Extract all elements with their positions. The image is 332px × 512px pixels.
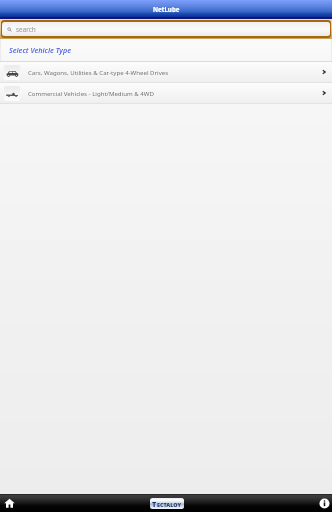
button[interactable]: search <box>2 22 330 36</box>
staticText: Select Vehicle Type <box>9 45 72 55</box>
staticText: ECTALOY <box>157 501 182 508</box>
staticText: Commercial Vehicles - Light/Medium & 4WD <box>28 89 154 97</box>
staticText: T <box>152 499 157 509</box>
button[interactable]: Cars, Wagons, Utilities & Car-type 4-Whe… <box>0 62 332 82</box>
staticText: search <box>16 25 36 34</box>
button[interactable]: Home <box>0 494 18 512</box>
button[interactable]: Info <box>316 494 332 512</box>
staticText: NetLube <box>153 5 180 13</box>
staticText: Cars, Wagons, Utilities & Car-type 4-Whe… <box>28 68 169 76</box>
button[interactable]: Tectaloy <box>150 498 184 509</box>
button[interactable]: Commercial Vehicles - Light/Medium & 4WD <box>0 83 332 103</box>
